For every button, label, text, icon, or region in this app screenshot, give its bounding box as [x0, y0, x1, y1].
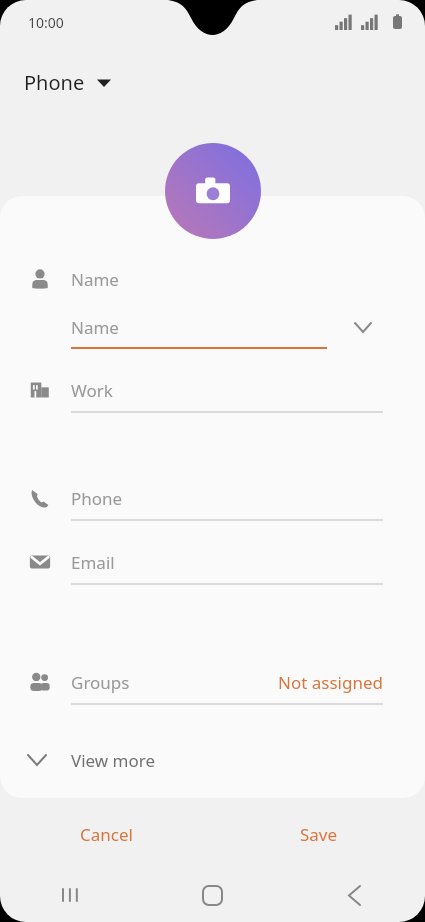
button[interactable]: Name: [0, 302, 425, 358]
staticText: Email: [71, 551, 115, 574]
button[interactable]: Home: [141, 872, 283, 918]
staticText: View more: [71, 749, 156, 772]
staticText: Work: [71, 379, 113, 402]
button[interactable]: Groups: [0, 658, 425, 714]
button[interactable]: Name: [0, 256, 425, 302]
button[interactable]: Work: [0, 366, 425, 422]
staticText: Groups: [71, 671, 130, 694]
staticText: Name: [71, 268, 119, 291]
staticText: Phone: [71, 487, 123, 510]
button[interactable]: Phone: [22, 65, 113, 100]
button[interactable]: Email: [0, 538, 425, 594]
button[interactable]: View more: [0, 736, 425, 784]
staticText: Not assigned: [278, 671, 383, 694]
button[interactable]: Back: [283, 872, 425, 918]
button[interactable]: Cancel: [0, 812, 212, 856]
staticText: Save: [300, 823, 338, 846]
button[interactable]: Phone: [0, 474, 425, 530]
button[interactable]: Expand name: [349, 313, 377, 341]
staticText: Cancel: [80, 823, 133, 846]
staticText: Name: [71, 316, 119, 339]
staticText: Phone: [24, 69, 85, 96]
staticText: 10:00: [28, 13, 64, 32]
button[interactable]: Save: [212, 812, 425, 856]
button[interactable]: Add photo: [165, 143, 261, 239]
button[interactable]: Recents: [0, 872, 141, 918]
